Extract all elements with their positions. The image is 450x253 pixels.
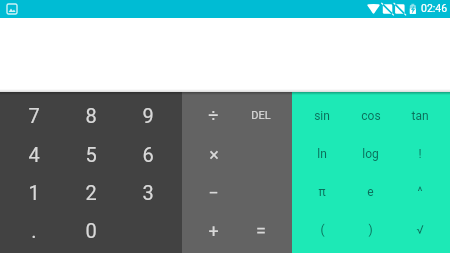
button[interactable]: log [346,135,395,173]
button[interactable]: = [237,211,284,249]
staticText: ) [368,223,373,237]
button[interactable]: 7 [6,96,62,135]
staticText: ( [320,223,325,237]
staticText: = [256,220,266,241]
staticText: ln [317,147,327,161]
staticText: ÷ [208,105,219,126]
button[interactable]: 9 [119,96,176,135]
staticText: ! [418,147,422,161]
button[interactable]: ) [346,211,395,249]
staticText: DEL [251,109,271,122]
button[interactable]: 3 [119,173,176,211]
staticText: e [367,185,374,199]
button[interactable]: ^ [395,173,444,211]
staticText: ^ [417,185,423,199]
staticText: 9 [142,104,154,127]
staticText: π [318,185,326,199]
button[interactable]: ÷ [190,96,237,135]
button[interactable]: sin [298,96,346,135]
staticText: − [208,182,219,203]
staticText: 7 [28,104,40,127]
staticText: + [208,220,219,241]
button[interactable]: × [190,135,237,173]
button[interactable]: ln [298,135,346,173]
staticText: sin [314,109,330,123]
button[interactable]: tan [395,96,444,135]
button[interactable]: ( [298,211,346,249]
button[interactable]: DEL [237,96,284,135]
staticText: 02:46 [421,2,448,14]
button[interactable]: 2 [62,173,119,211]
button[interactable]: 4 [6,135,62,173]
button[interactable]: 0 [62,211,119,249]
staticText: 4 [28,143,40,166]
staticText: 0 [85,219,97,242]
button[interactable]: ! [395,135,444,173]
button[interactable]: 1 [6,173,62,211]
staticText: 6 [142,143,154,166]
staticText: √ [416,223,424,237]
staticText: 8 [85,104,97,127]
button[interactable]: + [190,211,237,249]
staticText: log [362,147,379,161]
staticText: . [31,219,37,242]
button[interactable]: cos [346,96,395,135]
other: Screenshot [7,4,17,14]
staticText: 2 [85,181,97,204]
staticText: × [209,144,219,165]
button[interactable]: π [298,173,346,211]
button[interactable]: . [6,211,62,249]
button[interactable]: 8 [62,96,119,135]
button[interactable]: e [346,173,395,211]
staticText: 5 [85,143,97,166]
button[interactable]: √ [395,211,444,249]
staticText: 1 [28,181,40,204]
button[interactable]: − [190,173,237,211]
staticText: cos [361,109,381,123]
staticText: tan [411,109,429,123]
button[interactable]: 5 [62,135,119,173]
staticText: 3 [142,181,154,204]
button[interactable]: 6 [119,135,176,173]
